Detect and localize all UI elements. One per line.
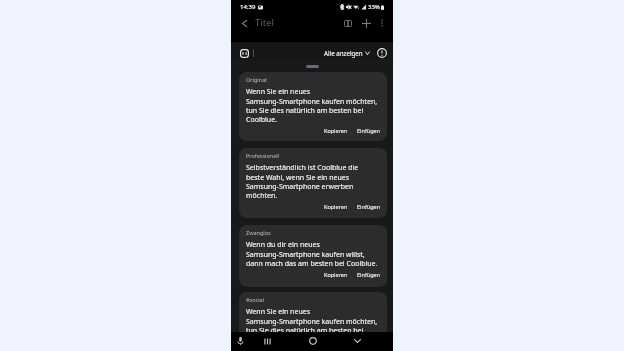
- staticText: Kopieren: [324, 127, 348, 134]
- staticText: 33%: [368, 3, 380, 11]
- button[interactable]: Home: [305, 333, 321, 349]
- button[interactable]: Einfügen: [355, 270, 383, 279]
- button[interactable]: Info: [376, 47, 388, 59]
- button[interactable]: Kopieren: [322, 270, 350, 279]
- staticText: Titel: [255, 16, 274, 29]
- staticText: Wenn du dir ein neues Samsung-Smartphone…: [246, 240, 378, 268]
- button[interactable]: Back: [236, 15, 252, 31]
- staticText: Kopieren: [324, 271, 348, 278]
- button[interactable]: Dictionary: [340, 15, 356, 31]
- button[interactable]: Voice input: [232, 333, 248, 349]
- staticText: Einfügen: [357, 271, 381, 278]
- button[interactable]: #social: [239, 292, 387, 332]
- staticText: Wenn Sie ein neues Samsung-Smartphone ka…: [246, 87, 378, 124]
- button[interactable]: Professionell: [239, 148, 387, 218]
- button[interactable]: Einfügen: [355, 126, 383, 135]
- staticText: Alle anzeigen: [324, 49, 363, 57]
- button[interactable]: Kopieren: [322, 126, 350, 135]
- button[interactable]: Alle anzeigen: [322, 48, 372, 58]
- staticText: Wenn Sie ein neues Samsung-Smartphone ka…: [246, 307, 378, 332]
- button[interactable]: Original: [239, 72, 387, 141]
- staticText: #social: [246, 296, 265, 303]
- button[interactable]: Writing assist: [238, 47, 250, 59]
- staticText: Zwanglos: [246, 229, 271, 236]
- button[interactable]: Kopieren: [322, 202, 350, 211]
- staticText: Professionell: [246, 152, 280, 159]
- staticText: Einfügen: [357, 203, 381, 210]
- button[interactable]: Einfügen: [355, 202, 383, 211]
- button[interactable]: More options: [375, 16, 389, 30]
- staticText: 14:39: [240, 3, 256, 11]
- button[interactable]: Hide keyboard: [349, 333, 365, 349]
- staticText: Selbstverständlich ist Coolblue die best…: [246, 163, 359, 200]
- button[interactable]: Add: [358, 15, 374, 31]
- button[interactable]: Zwanglos: [239, 225, 387, 287]
- staticText: Einfügen: [357, 127, 381, 134]
- staticText: Kopieren: [324, 203, 348, 210]
- button[interactable]: Recent apps: [259, 333, 275, 349]
- staticText: Original: [246, 76, 267, 83]
